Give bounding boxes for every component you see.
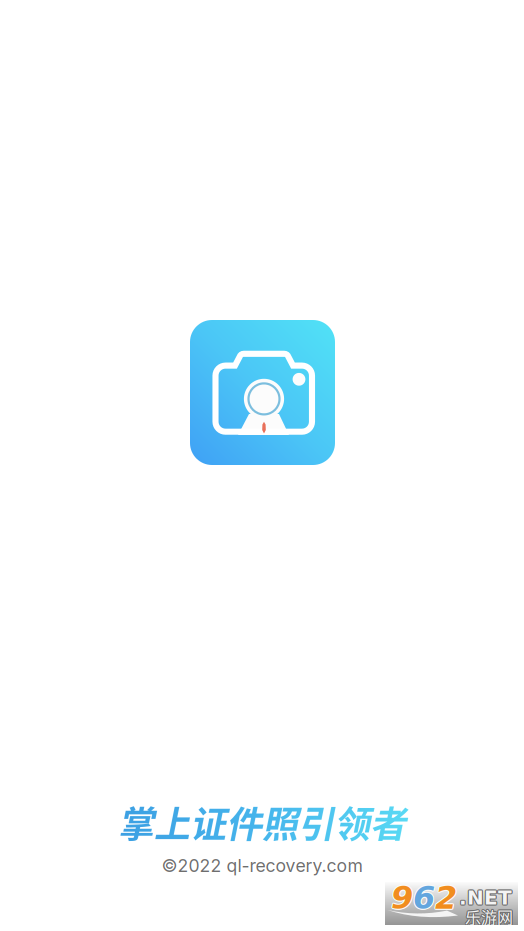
staticText: 2: [435, 878, 457, 915]
staticText: 乐游网: [466, 904, 514, 927]
staticText: 9: [392, 880, 414, 917]
staticText: 9: [392, 878, 414, 915]
staticText: .NET: [459, 885, 512, 908]
staticText: 2: [434, 879, 456, 916]
staticText: 9: [390, 880, 412, 917]
button[interactable]: 掌上证件照 app icon: [190, 320, 335, 465]
staticText: 乐游网: [464, 904, 512, 927]
staticText: .NET: [458, 885, 511, 908]
staticText: 乐游网: [464, 905, 512, 928]
staticText: 6: [413, 878, 435, 915]
staticText: .NET: [458, 886, 511, 909]
staticText: 2: [435, 880, 457, 917]
staticText: 乐游网: [465, 905, 513, 928]
staticText: ©2022 ql-recovery.com: [161, 855, 362, 876]
staticText: 6: [413, 879, 435, 916]
staticText: .NET: [459, 886, 512, 909]
staticText: 乐游网: [466, 906, 514, 929]
staticText: 9: [391, 878, 413, 915]
staticText: .NET: [458, 887, 511, 910]
staticText: 6: [412, 880, 434, 917]
staticText: 9: [391, 880, 413, 917]
staticText: 2: [434, 880, 456, 917]
staticText: 6: [413, 880, 435, 917]
staticText: 2: [436, 880, 458, 917]
staticText: 6: [412, 878, 434, 915]
staticText: 6: [414, 879, 436, 916]
staticText: .NET: [460, 885, 513, 908]
staticText: 9: [392, 879, 414, 916]
staticText: 乐游网: [465, 904, 513, 927]
staticText: .NET: [459, 887, 512, 910]
staticText: 乐游网: [465, 906, 513, 929]
staticText: 2: [436, 878, 458, 915]
staticText: 6: [412, 879, 434, 916]
staticText: 乐游网: [464, 906, 512, 929]
staticText: .NET: [460, 886, 513, 909]
staticText: 2: [434, 878, 456, 915]
staticText: .NET: [460, 887, 513, 910]
staticText: 2: [436, 879, 458, 916]
staticText: 9: [390, 879, 412, 916]
staticText: 9: [390, 878, 412, 915]
staticText: 9: [391, 879, 413, 916]
staticText: 乐游网: [466, 905, 514, 928]
staticText: 6: [414, 880, 436, 917]
staticText: 6: [414, 878, 436, 915]
staticText: 2: [435, 879, 457, 916]
